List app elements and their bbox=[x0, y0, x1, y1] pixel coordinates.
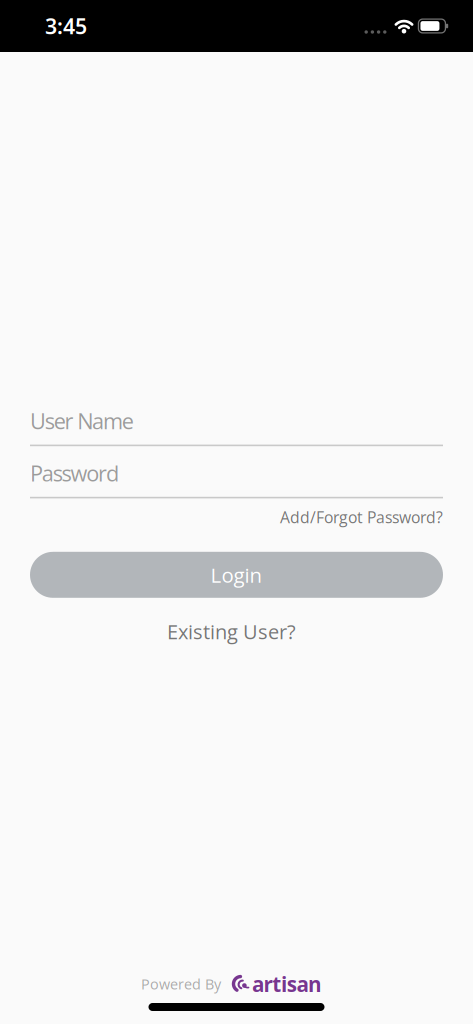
staticText: User Name bbox=[30, 406, 134, 436]
staticText: Powered By bbox=[141, 974, 221, 994]
button[interactable]: Existing User? bbox=[167, 618, 296, 645]
staticText: Password bbox=[30, 458, 119, 488]
staticText: Existing User? bbox=[167, 618, 296, 645]
staticText: artisan bbox=[252, 970, 322, 998]
staticText: Add/Forgot Password? bbox=[280, 506, 443, 528]
staticText: 3:45 bbox=[45, 12, 87, 40]
button[interactable]: Add/Forgot Password? bbox=[280, 506, 443, 528]
staticText: Login bbox=[210, 561, 262, 589]
button[interactable]: Login bbox=[30, 552, 443, 598]
